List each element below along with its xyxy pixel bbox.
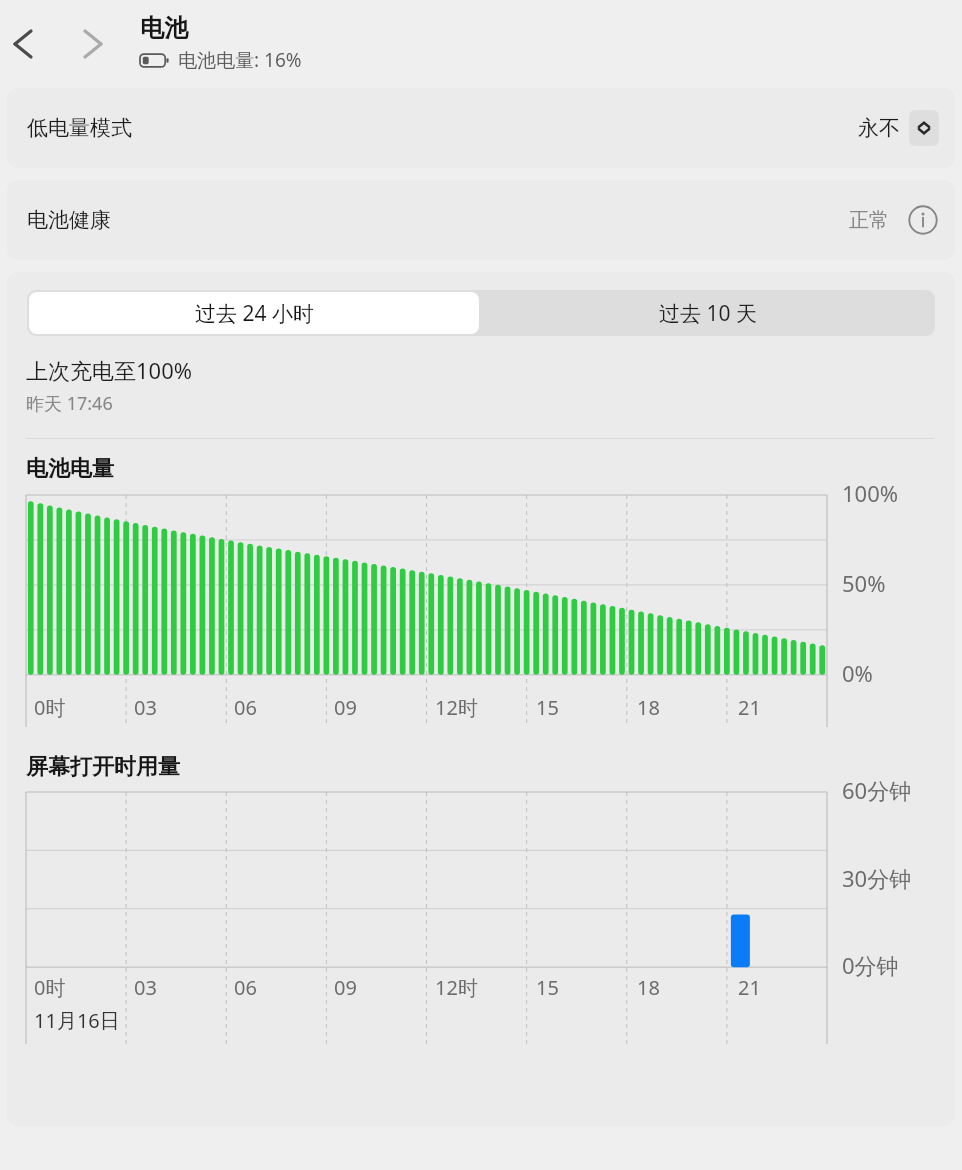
button[interactable]: 过去 10 天 [481,290,935,336]
staticText: 低电量模式 [27,115,132,141]
button[interactable]: 低电量模式 [7,88,955,168]
button[interactable]: 电池健康 [7,180,955,260]
button[interactable]: 选择低电量模式 [909,110,939,146]
staticText: 18 [637,974,660,1001]
staticText: 电池健康 [27,207,111,233]
staticText: 0时 [34,694,66,721]
staticText: 昨天 17:46 [26,391,113,416]
staticText: 06 [234,694,257,721]
staticText: 03 [134,974,157,1001]
staticText: 11月16日 [34,1007,120,1034]
staticText: 60分钟 [842,775,912,805]
staticText: 15 [536,974,559,1001]
staticText: 100% [842,478,899,508]
staticText: 12时 [435,974,478,1001]
staticText: 03 [134,694,157,721]
staticText: 15 [536,694,559,721]
staticText: 0% [842,658,873,688]
staticText: 50% [842,568,886,598]
staticText: 0时 [34,974,66,1001]
button[interactable]: 过去 24 小时 [29,292,479,334]
staticText: 屏幕打开时用量 [26,753,180,781]
staticText: 09 [334,974,357,1001]
staticText: 18 [637,694,660,721]
staticText: 电池电量 [26,455,114,483]
staticText: 12时 [435,694,478,721]
button[interactable]: 永不 [858,110,939,146]
staticText: 永不 [858,115,900,141]
button[interactable]: 电池健康信息 [907,204,939,236]
staticText: 06 [234,974,257,1001]
staticText: 21 [738,694,761,721]
staticText: 过去 10 天 [659,299,757,328]
staticText: 0分钟 [842,950,899,980]
staticText: 电池 [140,13,188,43]
staticText: 过去 24 小时 [195,299,314,328]
staticText: 上次充电至100% [26,355,193,385]
button[interactable]: 后退 [2,23,44,65]
button[interactable]: 前进 [72,23,114,65]
staticText: 电池电量: 16% [178,47,302,73]
staticText: 正常 [849,208,889,233]
staticText: 30分钟 [842,863,912,893]
staticText: 09 [334,694,357,721]
staticText: 21 [738,974,761,1001]
